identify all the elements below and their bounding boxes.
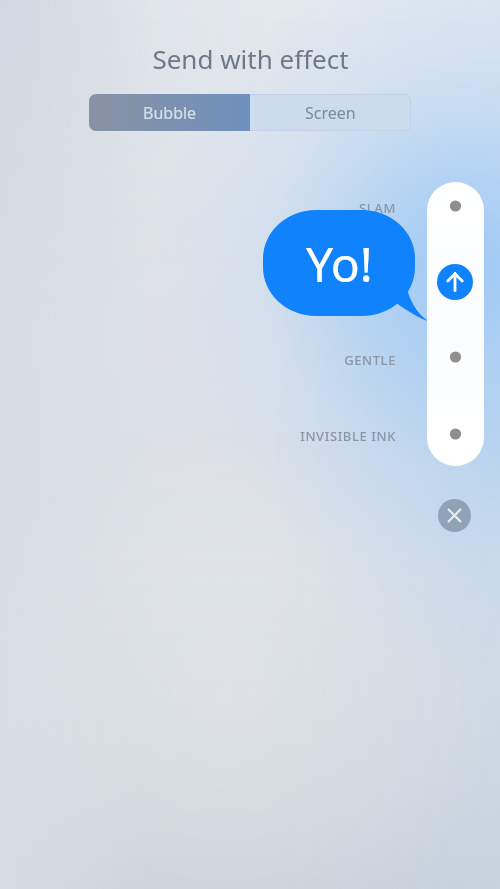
staticText: INVISIBLE INK: [300, 427, 396, 445]
button[interactable]: [427, 182, 484, 466]
staticText: SLAM: [359, 199, 396, 217]
staticText: Yo!: [306, 231, 373, 296]
staticText: Send with effect: [152, 41, 349, 76]
button[interactable]: Yo!: [263, 210, 425, 322]
button[interactable]: Send with Loud effect: [437, 264, 473, 300]
staticText: GENTLE: [344, 351, 396, 369]
button[interactable]: SLAM: [156, 199, 396, 217]
staticText: Bubble: [143, 102, 197, 124]
staticText: Screen: [305, 102, 356, 124]
button[interactable]: Bubble: [89, 94, 250, 131]
button[interactable]: INVISIBLE INK: [156, 427, 396, 445]
button[interactable]: Screen: [250, 94, 411, 131]
button[interactable]: GENTLE: [156, 351, 396, 369]
button[interactable]: Close: [438, 499, 471, 532]
